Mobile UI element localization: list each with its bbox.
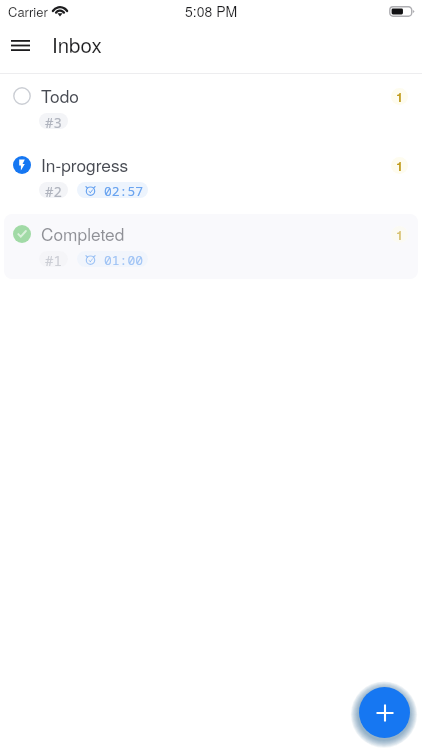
button[interactable]: Menu [0, 23, 40, 63]
staticText: 1 [396, 226, 403, 243]
staticText: 1 [396, 88, 403, 105]
button[interactable]: Todo [4, 76, 418, 141]
staticText: #1 [45, 251, 62, 267]
staticText: In-progress [41, 152, 129, 177]
staticText: Carrier [8, 2, 48, 21]
staticText: #3 [45, 113, 62, 129]
staticText: 5:08 PM [185, 1, 238, 21]
staticText: 02:57 [104, 182, 144, 198]
staticText: Inbox [52, 29, 102, 58]
staticText: 01:00 [104, 251, 144, 267]
staticText: #2 [45, 182, 62, 198]
button[interactable]: Completed [4, 214, 418, 279]
staticText: 1 [396, 157, 403, 174]
button[interactable]: Add task [359, 687, 410, 738]
button[interactable]: In-progress [4, 145, 418, 210]
staticText: Todo [41, 83, 79, 108]
staticText: Completed [41, 221, 125, 246]
